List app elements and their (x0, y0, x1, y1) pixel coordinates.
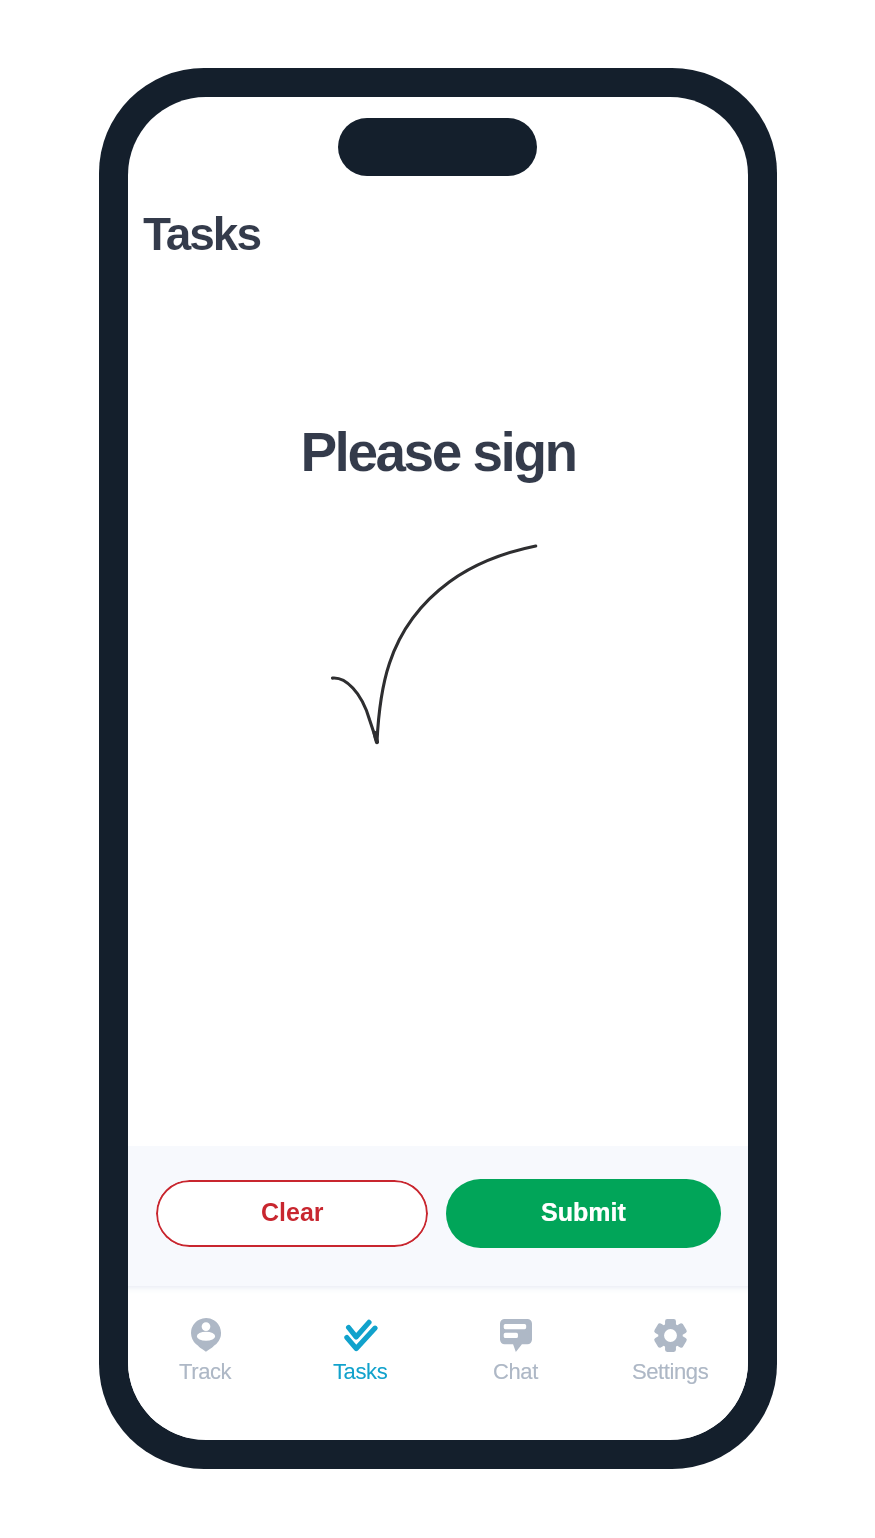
staticText: Please sign (128, 421, 748, 482)
button[interactable]: Clear (156, 1180, 428, 1247)
button[interactable]: Settings (593, 1294, 748, 1438)
staticText: Track (179, 1359, 232, 1384)
button[interactable]: Chat (438, 1294, 593, 1438)
button[interactable]: Track (128, 1294, 283, 1438)
staticText: Tasks (143, 208, 261, 259)
button[interactable]: Tasks (283, 1294, 438, 1438)
staticText: Chat (493, 1359, 538, 1384)
staticText: Clear (261, 1198, 324, 1226)
staticText: Tasks (333, 1359, 388, 1384)
button[interactable]: Submit (446, 1179, 721, 1248)
staticText: Submit (541, 1198, 626, 1226)
staticText: Settings (632, 1359, 709, 1384)
